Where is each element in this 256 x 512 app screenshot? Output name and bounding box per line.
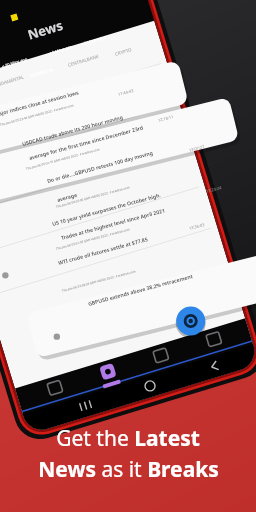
staticText: USDCAD trade above its 200 hour moving: [21, 113, 124, 147]
staticText: Thu Jan 06 03:38:24 GMT+08:00 2022 - For…: [61, 269, 137, 293]
staticText: CRYPTO: [114, 46, 133, 57]
staticText: < 30 Mins ago: [1, 56, 29, 69]
staticText: < 2 Hours ago: [80, 34, 108, 47]
staticText: News as it Breaks: [38, 455, 219, 484]
staticText: WTI crude oil futures settle at $77.85: [57, 235, 149, 266]
staticText: 11:44:43: [117, 88, 134, 97]
button[interactable]: Forexlive news app preview: [0, 0, 256, 512]
staticText: 13:07:27: [188, 144, 205, 153]
staticText: average: [56, 191, 78, 203]
staticText: Trades at the highest level since April …: [60, 206, 166, 241]
staticText: CENTRALBANK: [67, 53, 99, 68]
staticText: News: [25, 16, 65, 44]
staticText: < 1 Hour ago: [48, 44, 74, 56]
staticText: 12:18:11: [157, 114, 174, 123]
staticText: Thu Jan 06 03:51:03 GMT+08:00 2022 - For…: [55, 227, 131, 251]
staticText: US 10 year yield surpasses the October h…: [51, 191, 162, 227]
staticText: FUNDAMENTAL: [0, 73, 25, 89]
staticText: GBPUSD extends above 38.2% retracement: [87, 272, 194, 307]
staticText: Get the Latest: [56, 424, 200, 453]
staticText: Major indices close at session lows: [0, 88, 80, 118]
staticText: Thu Jan 06 04:07:00 GMT+08:00 2022 - For…: [55, 185, 131, 209]
staticText: average for the first time since Decembe…: [28, 124, 144, 161]
staticText: 13:23:24: [205, 185, 222, 194]
staticText: Thu Jan 06 05:23:44 GMT+08:00 2022 - For…: [0, 103, 75, 127]
staticText: Thu Jan 06 05:01:15 GMT+08:00 2022 - For…: [25, 147, 101, 171]
staticText: Do or die....GBPUSD retests 100 day movi…: [46, 149, 154, 184]
staticText: 13:36:03: [188, 222, 205, 231]
